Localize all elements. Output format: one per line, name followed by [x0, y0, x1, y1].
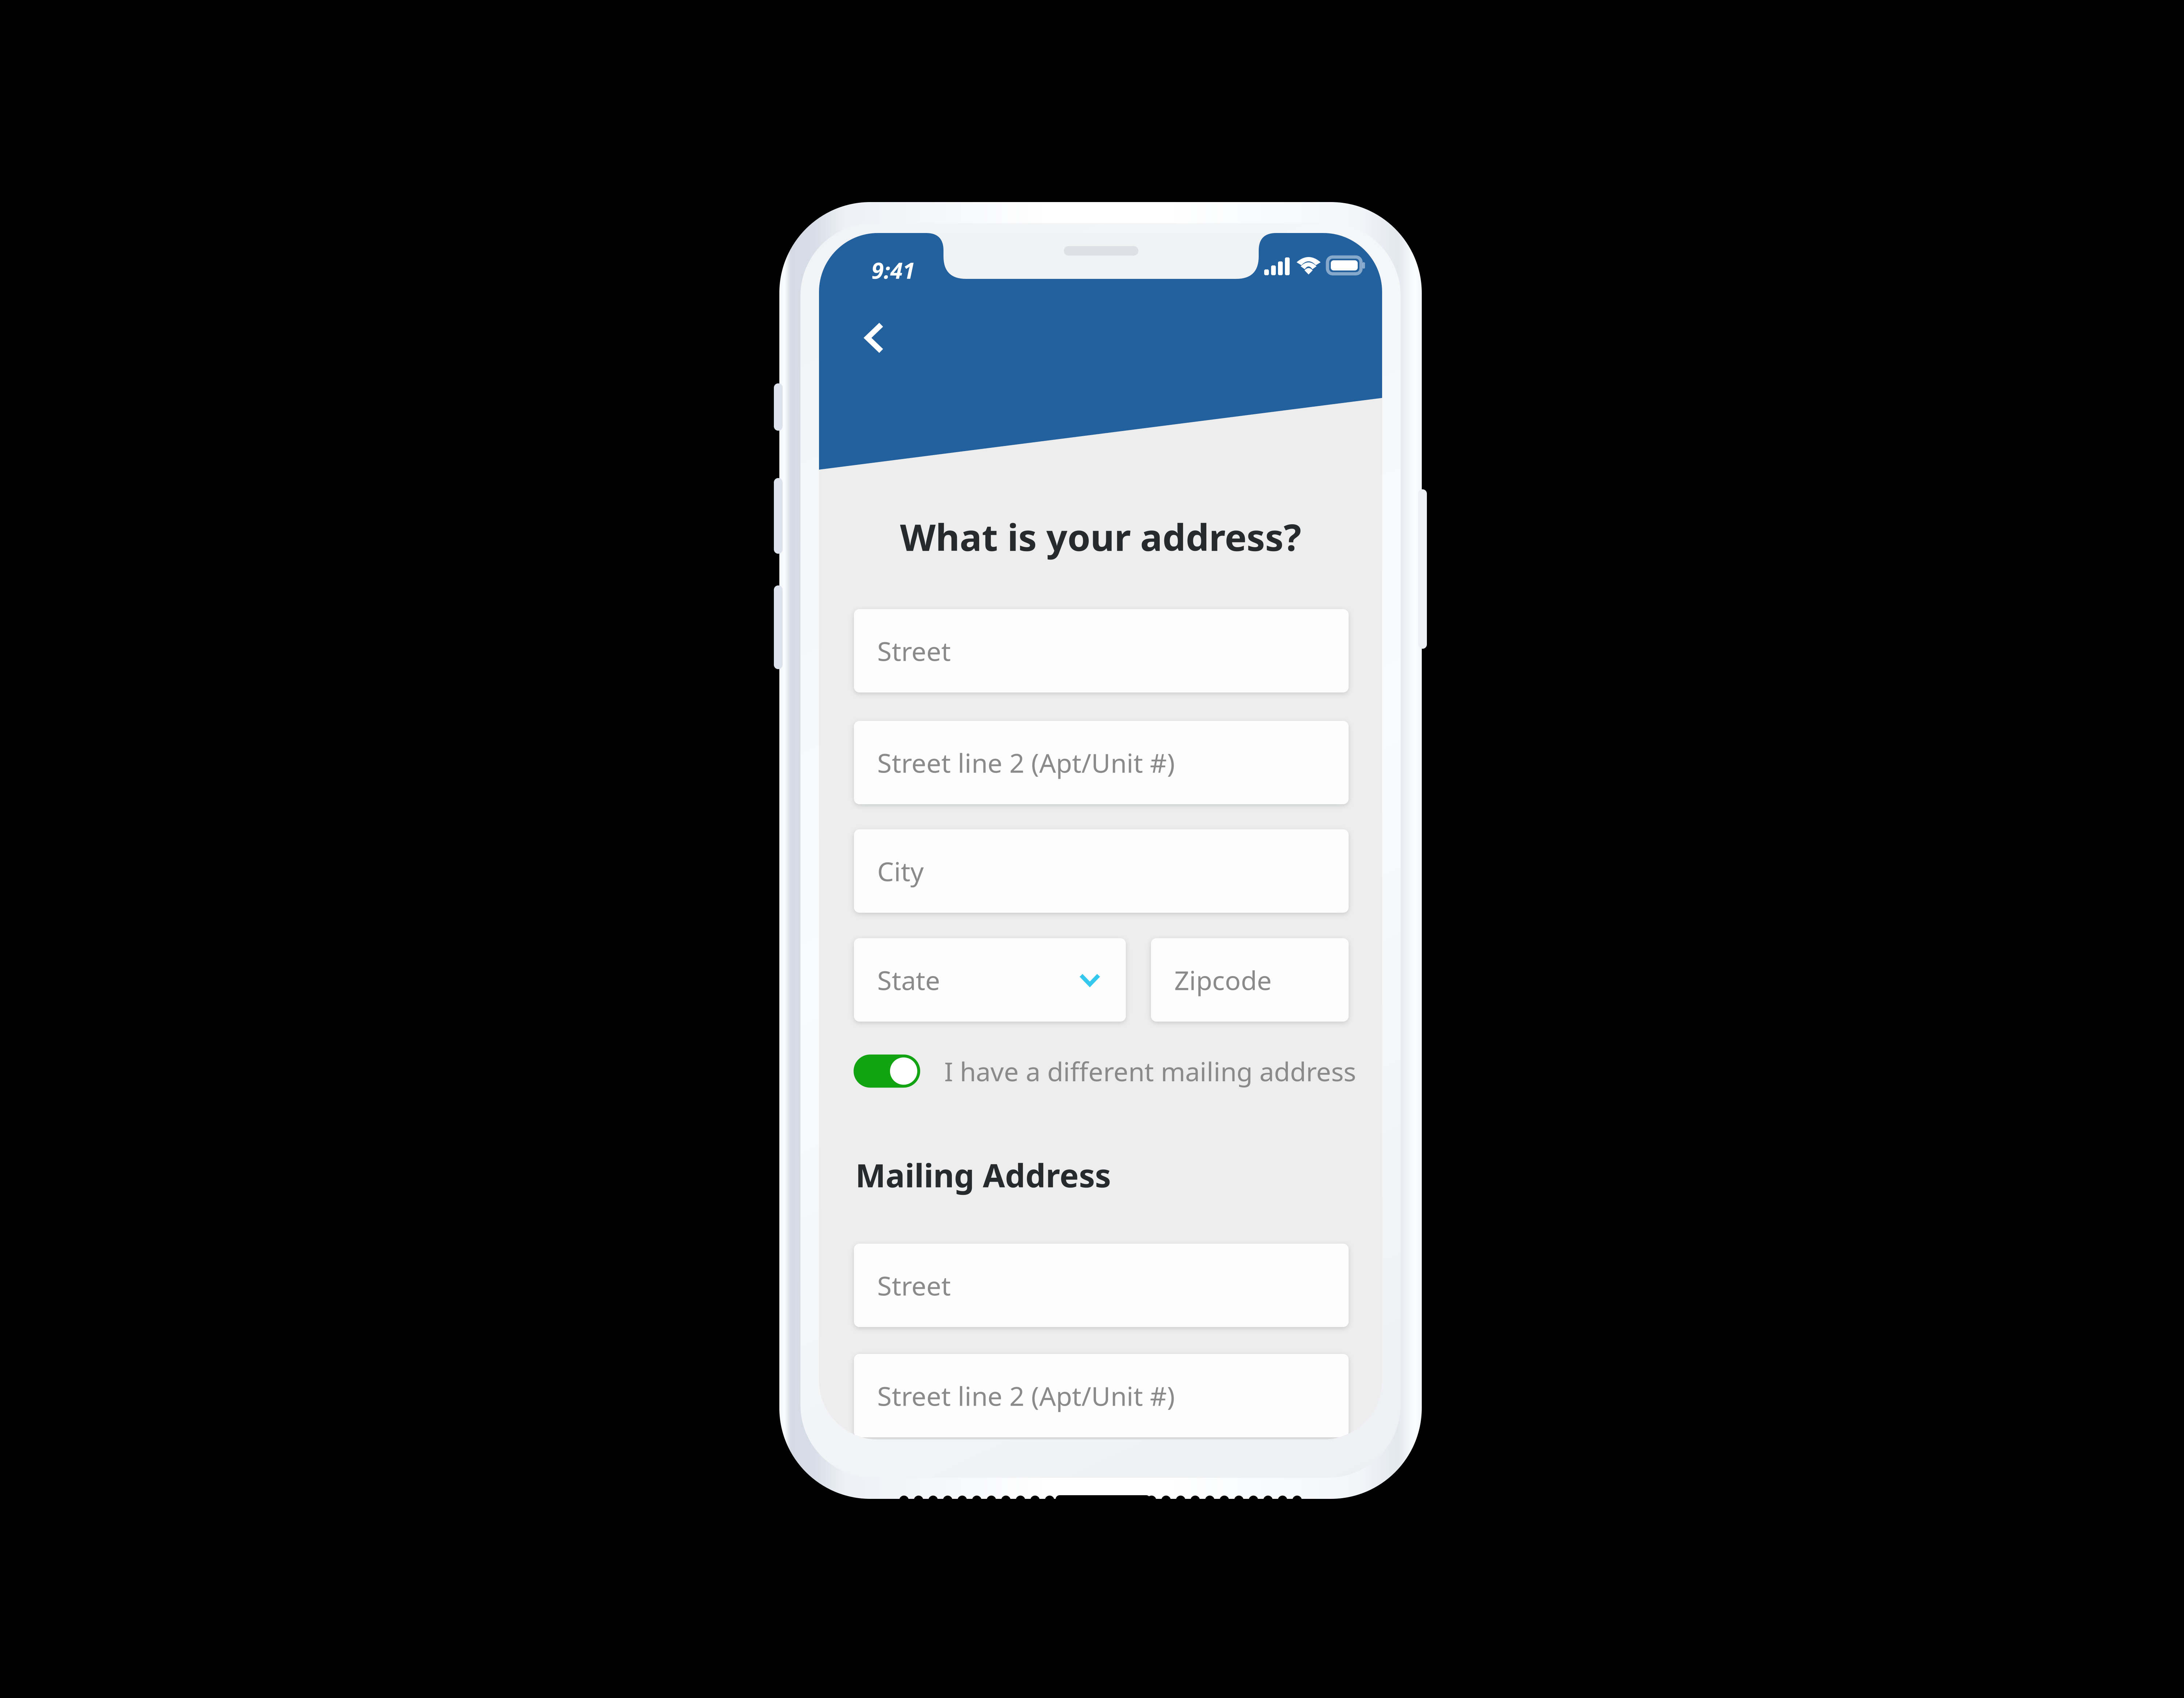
button[interactable]: Zipcode: [1151, 938, 1349, 1022]
button[interactable]: I have a different mailing address: [854, 1053, 1370, 1089]
staticText: 9:41: [871, 255, 915, 285]
button[interactable]: Street line 2 (Apt/Unit #): [854, 1354, 1349, 1437]
button[interactable]: Street line 2 (Apt/Unit #): [854, 721, 1349, 804]
staticText: What is your address?: [900, 512, 1301, 561]
button[interactable]: Back: [842, 305, 907, 371]
button[interactable]: Street: [854, 1244, 1349, 1327]
staticText: I have a different mailing address: [944, 1054, 1356, 1088]
staticText: Street line 2 (Apt/Unit #): [877, 1378, 1175, 1413]
staticText: Street: [877, 1268, 951, 1303]
staticText: City: [877, 854, 924, 888]
staticText: Street line 2 (Apt/Unit #): [877, 745, 1175, 780]
staticText: Zipcode: [1174, 962, 1272, 997]
staticText: State: [877, 962, 940, 997]
staticText: Mailing Address: [855, 1154, 1111, 1196]
staticText: Street: [877, 633, 951, 668]
button[interactable]: Street: [854, 609, 1349, 692]
button[interactable]: State: [854, 938, 1126, 1022]
button[interactable]: City: [854, 829, 1349, 913]
